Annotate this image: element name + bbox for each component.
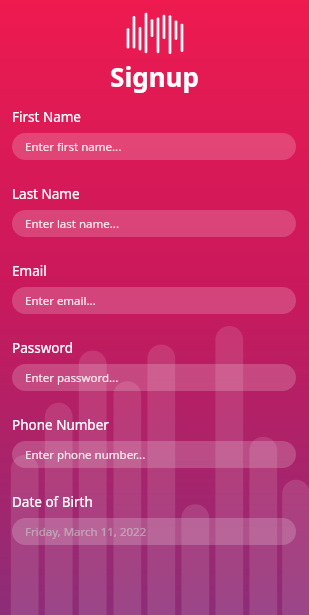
staticText: Signup [0, 59, 309, 94]
staticText: Enter first name... [25, 139, 122, 155]
button[interactable]: Enter first name... [12, 133, 296, 160]
button[interactable]: Enter phone number... [12, 441, 296, 468]
staticText: Enter last name... [25, 216, 119, 232]
staticText: Last Name [12, 185, 80, 203]
staticText: Password [12, 339, 74, 357]
button[interactable]: Enter password... [12, 364, 296, 391]
button[interactable]: Friday, March 11, 2022 [12, 518, 296, 545]
staticText: Friday, March 11, 2022 [25, 524, 147, 540]
button[interactable]: Enter last name... [12, 210, 296, 237]
button[interactable]: Enter email... [12, 287, 296, 314]
other: App logo [125, 11, 185, 55]
staticText: Email [12, 262, 47, 280]
staticText: Enter phone number... [25, 447, 146, 463]
staticText: First Name [12, 108, 81, 126]
staticText: Phone Number [12, 416, 109, 434]
staticText: Enter password... [25, 370, 119, 386]
staticText: Date of Birth [12, 493, 93, 511]
staticText: Enter email... [25, 293, 96, 309]
